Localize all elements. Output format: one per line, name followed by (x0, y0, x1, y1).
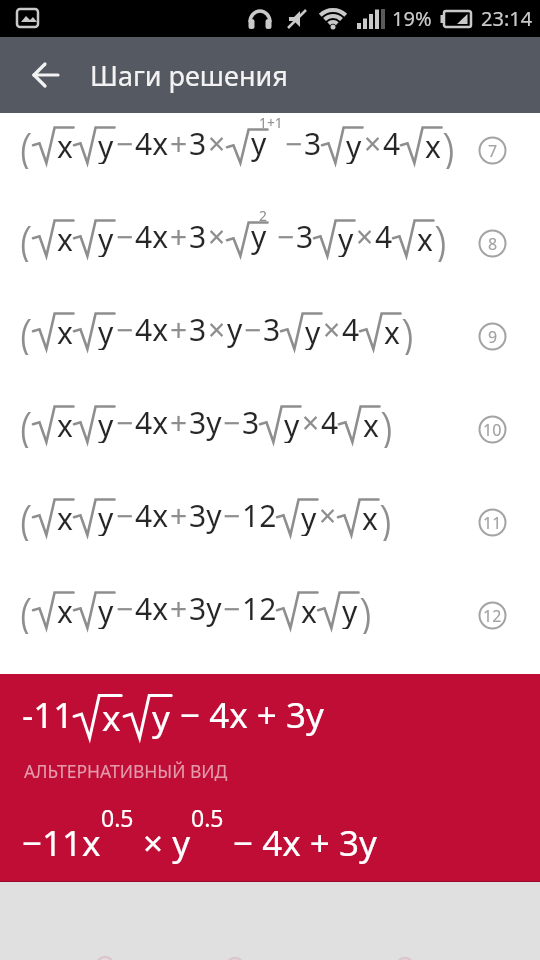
staticText: x (384, 312, 400, 350)
staticText: ) (380, 397, 393, 448)
staticText: 12 (242, 588, 277, 629)
staticText: −11x (22, 819, 101, 867)
button[interactable]: 9 (478, 322, 507, 351)
staticText: × (208, 309, 226, 350)
staticText: 23:14 (481, 5, 533, 32)
staticText: 4x (135, 216, 169, 257)
staticText: 4x (135, 495, 169, 536)
button[interactable]: ( (0, 392, 540, 485)
staticText: 3 (263, 309, 281, 350)
staticText: + (170, 123, 188, 164)
staticText: 3y (189, 495, 222, 536)
button[interactable]: 11 (478, 508, 507, 537)
staticText: 12 (242, 495, 277, 536)
staticText: y (152, 694, 170, 739)
button[interactable]: 7 (478, 136, 507, 165)
staticText: + (170, 495, 188, 536)
staticText: x (57, 312, 73, 350)
staticText: − (223, 495, 241, 536)
staticText: + (170, 402, 188, 443)
staticText: x (362, 498, 378, 536)
staticText: 19% (392, 5, 432, 32)
button[interactable]: 8 (478, 229, 507, 258)
staticText: 3 (189, 123, 207, 164)
staticText: y (98, 219, 114, 257)
button[interactable]: ( (0, 113, 540, 206)
staticText: ( (20, 118, 33, 169)
staticText: 10 (483, 419, 502, 441)
staticText: 4x (135, 402, 169, 443)
staticText: y (98, 405, 114, 443)
staticText: × (356, 216, 374, 257)
staticText: × (323, 309, 341, 350)
staticText: − (285, 123, 303, 164)
button[interactable]: -11 (0, 674, 540, 881)
button[interactable]: ( (0, 299, 540, 392)
staticText: × (208, 216, 226, 257)
staticText: y (98, 498, 114, 536)
staticText: − (244, 309, 262, 350)
staticText: y (305, 312, 321, 350)
staticText: 11 (483, 512, 502, 534)
staticText: y (251, 123, 267, 164)
staticText: − (116, 216, 134, 257)
staticText: y (346, 126, 362, 164)
staticText: y (98, 591, 114, 629)
staticText: ) (442, 118, 455, 169)
staticText: 0.5 (191, 802, 224, 833)
staticText: x (425, 126, 441, 164)
staticText: − 4x + 3y (171, 691, 324, 739)
button[interactable]: ( (0, 206, 540, 299)
staticText: − (116, 309, 134, 350)
button[interactable]: ( (0, 485, 540, 578)
button[interactable]: ( (0, 578, 540, 671)
staticText: Шаги решения (90, 57, 288, 94)
staticText: -11 (22, 691, 74, 739)
staticText: × (302, 402, 320, 443)
staticText: − (116, 588, 134, 629)
staticText: 4 (342, 309, 360, 350)
staticText: x (57, 591, 73, 629)
staticText: + (170, 309, 188, 350)
button[interactable] (18, 47, 74, 103)
staticText: y (98, 126, 114, 164)
staticText: − (277, 216, 295, 257)
staticText: ) (379, 490, 392, 541)
staticText: x (363, 405, 379, 443)
staticText: x (417, 219, 433, 257)
staticText: × (319, 495, 337, 536)
button[interactable]: 10 (478, 415, 507, 444)
staticText: ) (359, 583, 372, 634)
staticText: x (57, 498, 73, 536)
staticText: − (116, 402, 134, 443)
staticText: ) (401, 304, 414, 355)
staticText: 0.5 (101, 802, 134, 833)
staticText: x (57, 405, 73, 443)
staticText: y (338, 219, 354, 257)
staticText: ( (20, 211, 33, 262)
staticText: ( (20, 583, 33, 634)
staticText: + (170, 216, 188, 257)
staticText: y (342, 591, 358, 629)
staticText: 3y (189, 588, 222, 629)
staticText: 2 (259, 206, 267, 225)
staticText: x (57, 219, 73, 257)
staticText: 3y (189, 402, 222, 443)
staticText: 3 (242, 402, 260, 443)
staticText: 3 (189, 216, 207, 257)
staticText: ( (20, 397, 33, 448)
staticText: 4x (135, 588, 169, 629)
button[interactable]: 12 (478, 601, 507, 630)
staticText: 3 (296, 216, 314, 257)
staticText: ( (20, 490, 33, 541)
staticText: y (98, 312, 114, 350)
staticText: − (223, 402, 241, 443)
staticText: 1+1 (259, 113, 283, 132)
staticText: x (57, 126, 73, 164)
staticText: × (364, 123, 382, 164)
staticText: − (116, 123, 134, 164)
staticText: x (301, 591, 317, 629)
staticText: + (170, 588, 188, 629)
staticText: АЛЬТЕРНАТИВНЫЙ ВИД (24, 759, 228, 783)
staticText: × y (134, 819, 191, 867)
